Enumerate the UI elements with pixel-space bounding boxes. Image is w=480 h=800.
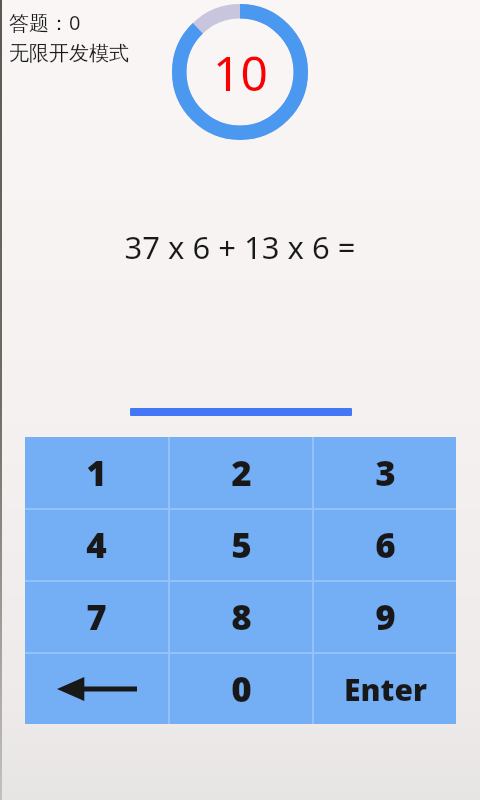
button[interactable]: 4 (25, 510, 168, 580)
button[interactable]: 9 (314, 582, 456, 652)
staticText: Enter (344, 669, 427, 710)
other: Countdown 10 seconds (172, 4, 308, 140)
button[interactable]: Backspace (25, 654, 168, 724)
staticText: 答题：0 (9, 9, 81, 36)
button[interactable]: 6 (314, 510, 456, 580)
staticText: 7 (86, 593, 107, 641)
button[interactable]: 1 (25, 437, 168, 508)
staticText: 10 (213, 40, 268, 105)
button[interactable]: Enter (314, 654, 456, 724)
staticText: 5 (231, 521, 252, 569)
button[interactable]: 7 (25, 582, 168, 652)
staticText: 2 (231, 449, 252, 497)
button[interactable]: 5 (170, 510, 312, 580)
staticText: 4 (86, 521, 107, 569)
button[interactable]: 8 (170, 582, 312, 652)
button[interactable]: 2 (170, 437, 312, 508)
staticText: 8 (231, 593, 252, 641)
staticText: 9 (375, 593, 396, 641)
button[interactable]: 3 (314, 437, 456, 508)
staticText: 1 (86, 449, 107, 497)
staticText: 37 x 6 + 13 x 6 = (124, 226, 356, 268)
staticText: 6 (375, 521, 396, 569)
button[interactable]: 0 (170, 654, 312, 724)
staticText: 3 (375, 449, 396, 497)
staticText: 0 (231, 665, 252, 713)
staticText: 无限开发模式 (9, 41, 129, 66)
